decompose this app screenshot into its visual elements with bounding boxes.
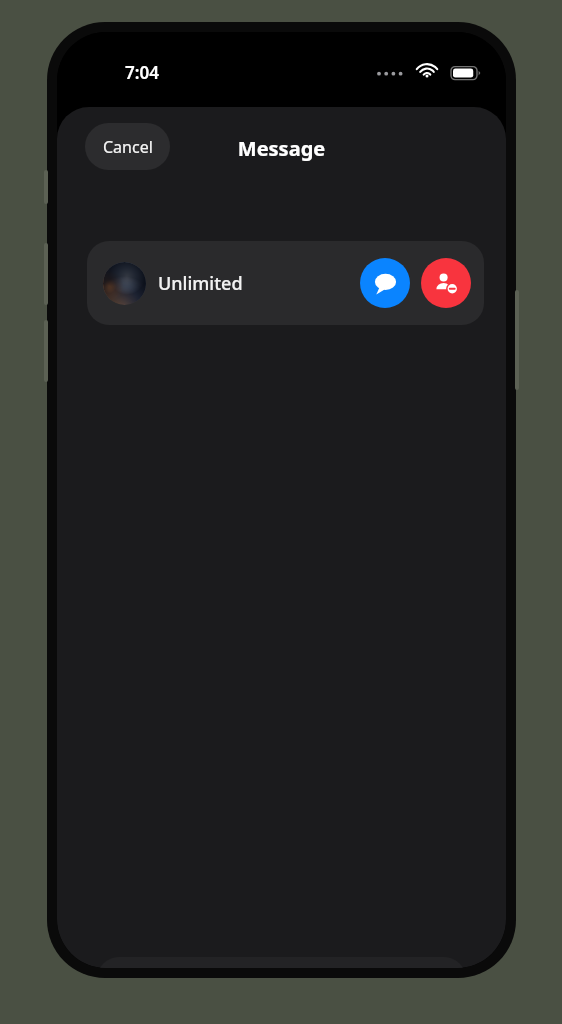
staticText: Message xyxy=(57,135,506,162)
button[interactable]: Send message xyxy=(360,258,410,308)
button[interactable]: Cancel xyxy=(85,123,170,170)
button[interactable]: Unlimited xyxy=(87,241,484,325)
staticText: Unlimited xyxy=(158,271,243,296)
staticText: Cancel xyxy=(103,136,153,158)
staticText: 7:04 xyxy=(125,61,159,84)
button[interactable]: Remove friend xyxy=(421,258,471,308)
